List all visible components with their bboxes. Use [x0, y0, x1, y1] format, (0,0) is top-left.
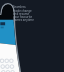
button[interactable]: Seamless mode change and resume your fav… [13, 5, 34, 21]
staticText: Seamless mode change and resume your fav… [13, 5, 34, 21]
